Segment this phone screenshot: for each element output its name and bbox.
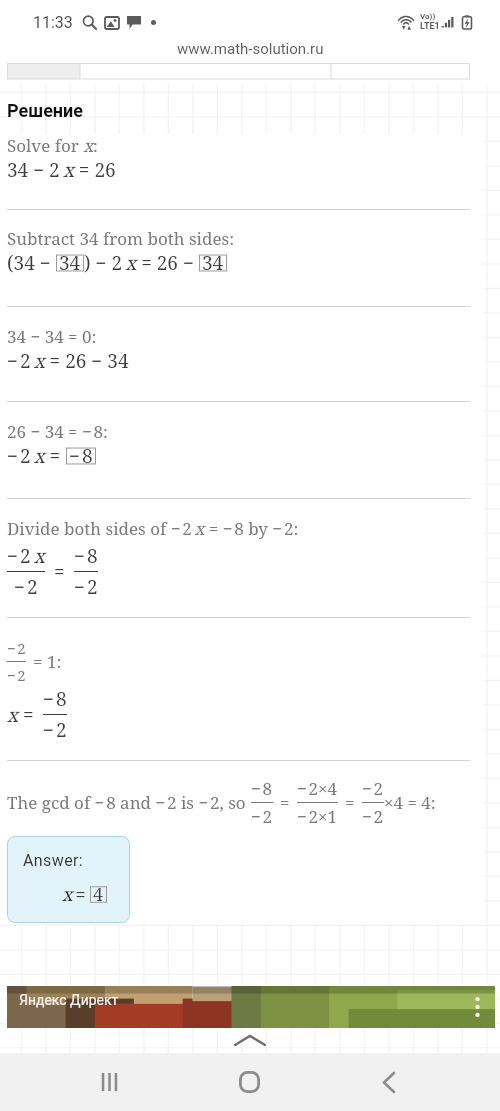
- staticText: Solve for x:: [7, 134, 98, 157]
- staticText: = 1:: [33, 650, 62, 673]
- staticText: (34 −: [7, 250, 56, 276]
- staticText: 34: [59, 250, 81, 276]
- staticText: − 2: [7, 638, 26, 658]
- staticText: Answer:: [23, 851, 84, 870]
- staticText: x =: [7, 702, 34, 728]
- staticText: − 2: [43, 717, 67, 743]
- staticText: 34: [202, 250, 224, 276]
- staticText: − 2 x: [7, 543, 45, 569]
- staticText: =: [345, 791, 355, 814]
- button[interactable]: Recent apps: [0, 1053, 166, 1111]
- staticText: =: [280, 791, 290, 814]
- staticText: The gcd of − 8 and − 2 is − 2, so: [7, 791, 251, 814]
- staticText: ×4 = 4:: [384, 791, 436, 814]
- staticText: Яндекс Директ: [19, 992, 119, 1008]
- button[interactable]: Яндекс Директ: [7, 986, 495, 1028]
- other: Ad options: [475, 996, 480, 1018]
- staticText: − 8: [74, 543, 98, 569]
- staticText: − 2: [14, 574, 38, 600]
- staticText: − 8: [251, 777, 273, 800]
- staticText: Subtract 34 from both sides:: [7, 227, 235, 250]
- staticText: − 2: [362, 777, 384, 800]
- staticText: − 8: [69, 443, 93, 469]
- staticText: − 8: [43, 686, 67, 712]
- staticText: =: [54, 559, 65, 585]
- staticText: 11:33: [33, 13, 73, 32]
- staticText: 34 − 2 x = 26: [7, 157, 116, 183]
- staticText: − 2×4: [297, 777, 338, 800]
- staticText: − 2 x =: [7, 443, 66, 469]
- staticText: − 2 x = 26 − 34: [7, 348, 129, 374]
- staticText: 26 − 34 = − 8:: [7, 420, 108, 443]
- staticText: x =: [62, 882, 89, 907]
- staticText: − 2: [74, 574, 98, 600]
- staticText: LTE1: [420, 21, 440, 32]
- staticText: − 2: [251, 805, 273, 828]
- button[interactable]: Back: [333, 1053, 500, 1111]
- staticText: 34 − 34 = 0:: [7, 325, 97, 348]
- staticText: Решение: [7, 100, 84, 121]
- staticText: 4: [93, 882, 104, 907]
- button[interactable]: Home: [166, 1053, 333, 1111]
- staticText: Divide both sides of − 2 x = − 8 by − 2:: [7, 517, 299, 540]
- staticText: Vo)): [420, 12, 436, 21]
- staticText: www.math-solution.ru: [177, 40, 324, 58]
- staticText: ) − 2 x = 26 −: [84, 250, 199, 276]
- staticText: − 2: [7, 665, 26, 685]
- staticText: − 2: [362, 805, 384, 828]
- staticText: − 2×1: [297, 805, 338, 828]
- button[interactable]: Answer:: [7, 836, 130, 923]
